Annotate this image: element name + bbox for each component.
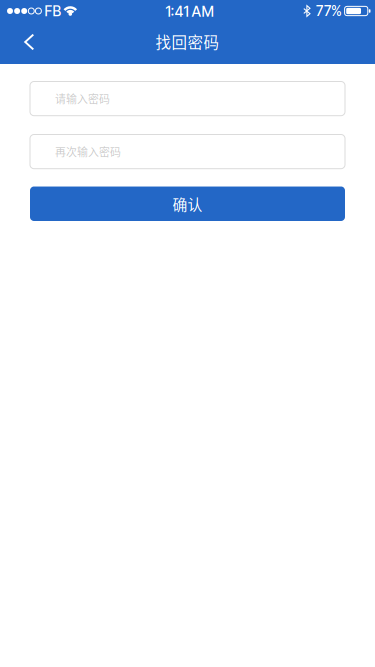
staticText: FB — [44, 2, 61, 20]
staticText: 77% — [316, 3, 342, 19]
button[interactable]: Back — [0, 20, 56, 64]
button[interactable]: 请输入密码 — [30, 81, 345, 116]
staticText: 再次输入密码 — [55, 144, 121, 159]
staticText: 确认 — [172, 193, 202, 214]
staticText: 请输入密码 — [55, 91, 110, 106]
button[interactable]: 再次输入密码 — [30, 134, 345, 169]
button[interactable]: 确认 — [30, 186, 345, 221]
staticText: 1:41 AM — [165, 3, 213, 20]
staticText: 找回密码 — [155, 30, 219, 53]
